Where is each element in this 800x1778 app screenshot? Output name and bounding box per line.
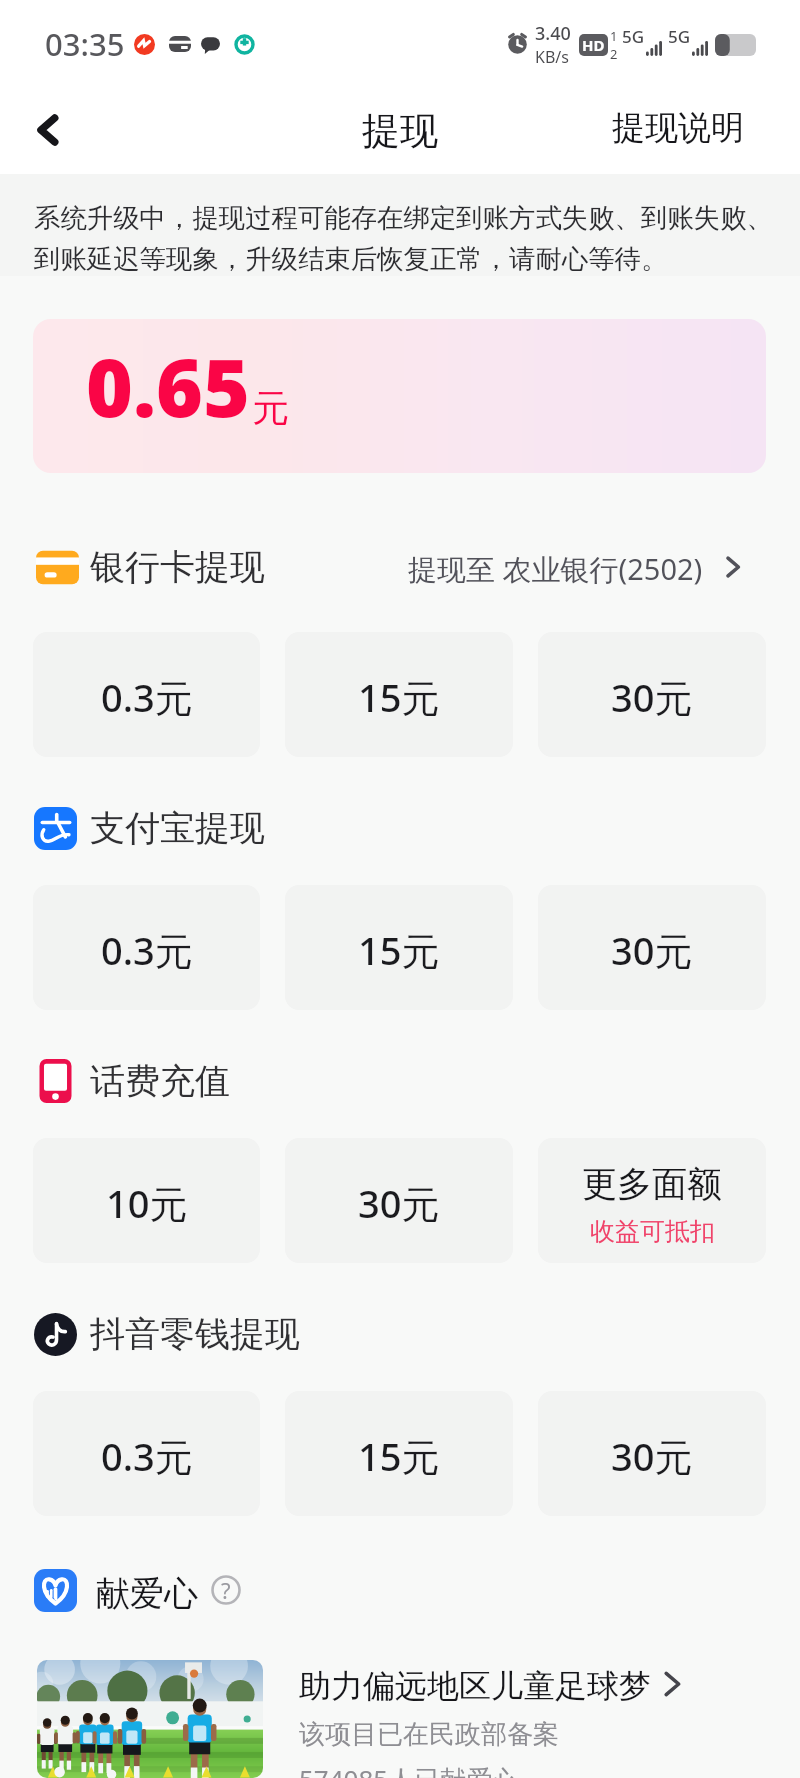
button[interactable]: 更多面额 [538,1138,766,1263]
staticText: 抖音零钱提现 [90,1312,300,1356]
staticText: 更多面额 [582,1162,722,1206]
staticText: 收益可抵扣 [590,1216,715,1247]
staticText: 30元 [358,1177,440,1229]
button[interactable]: 30元 [285,1138,513,1263]
staticText: 助力偏远地区儿童足球梦 [299,1666,651,1706]
staticText: 该项目已在民政部备案 [299,1718,559,1751]
staticText: 5G [622,25,645,48]
button[interactable]: 15元 [285,885,513,1010]
staticText: 03:35 [45,23,125,65]
button[interactable]: 提现至 农业银行(2502) [428,545,766,589]
button[interactable]: Back [0,88,96,174]
staticText: 元 [252,385,289,432]
staticText: KB/s [535,46,569,68]
staticText: 3.40 [535,21,571,46]
button[interactable]: 10元 [33,1138,260,1263]
staticText: 15元 [358,924,440,976]
staticText: 15元 [358,1430,440,1482]
staticText: 提现 [362,107,438,155]
staticText: 5G [668,25,691,48]
staticText: 献爱心 [96,1572,198,1615]
button[interactable]: 提现说明 [588,91,800,171]
staticText: 提现至 农业银行(2502) [408,549,703,585]
button[interactable]: Help [211,1575,241,1605]
staticText: ? [221,1575,231,1605]
button[interactable]: 0.3元 [33,632,260,757]
button[interactable]: 15元 [285,1391,513,1516]
staticText: 提现说明 [612,107,744,149]
button[interactable]: 30元 [538,632,766,757]
button[interactable]: 0.3元 [33,1391,260,1516]
staticText: 15元 [358,671,440,723]
staticText: 30元 [611,671,693,723]
staticText: 30元 [611,1430,693,1482]
staticText: 10元 [106,1177,188,1229]
button[interactable]: 0.65 [33,319,766,473]
button[interactable]: 30元 [538,885,766,1010]
staticText: 话费充值 [90,1059,230,1103]
staticText: 30元 [611,924,693,976]
staticText: 1 [610,27,618,45]
staticText: 系统升级中，提现过程可能存在绑定到账方式失败、到账失败、 到账延迟等现象，升级结… [34,202,773,276]
button[interactable]: 0.3元 [33,885,260,1010]
button[interactable]: 30元 [538,1391,766,1516]
button[interactable]: 15元 [285,632,513,757]
staticText: 0.3元 [101,924,193,976]
staticText: 2 [610,45,618,63]
staticText: 0.65 [86,331,250,440]
button[interactable]: 助力偏远地区儿童足球梦 [37,1660,766,1778]
staticText: 0.3元 [101,671,193,723]
staticText: 银行卡提现 [90,545,265,589]
staticText: 支付宝提现 [90,806,265,850]
staticText: 574085人已献爱心 [299,1761,519,1778]
staticText: 0.3元 [101,1430,193,1482]
staticText: HD [582,35,605,55]
